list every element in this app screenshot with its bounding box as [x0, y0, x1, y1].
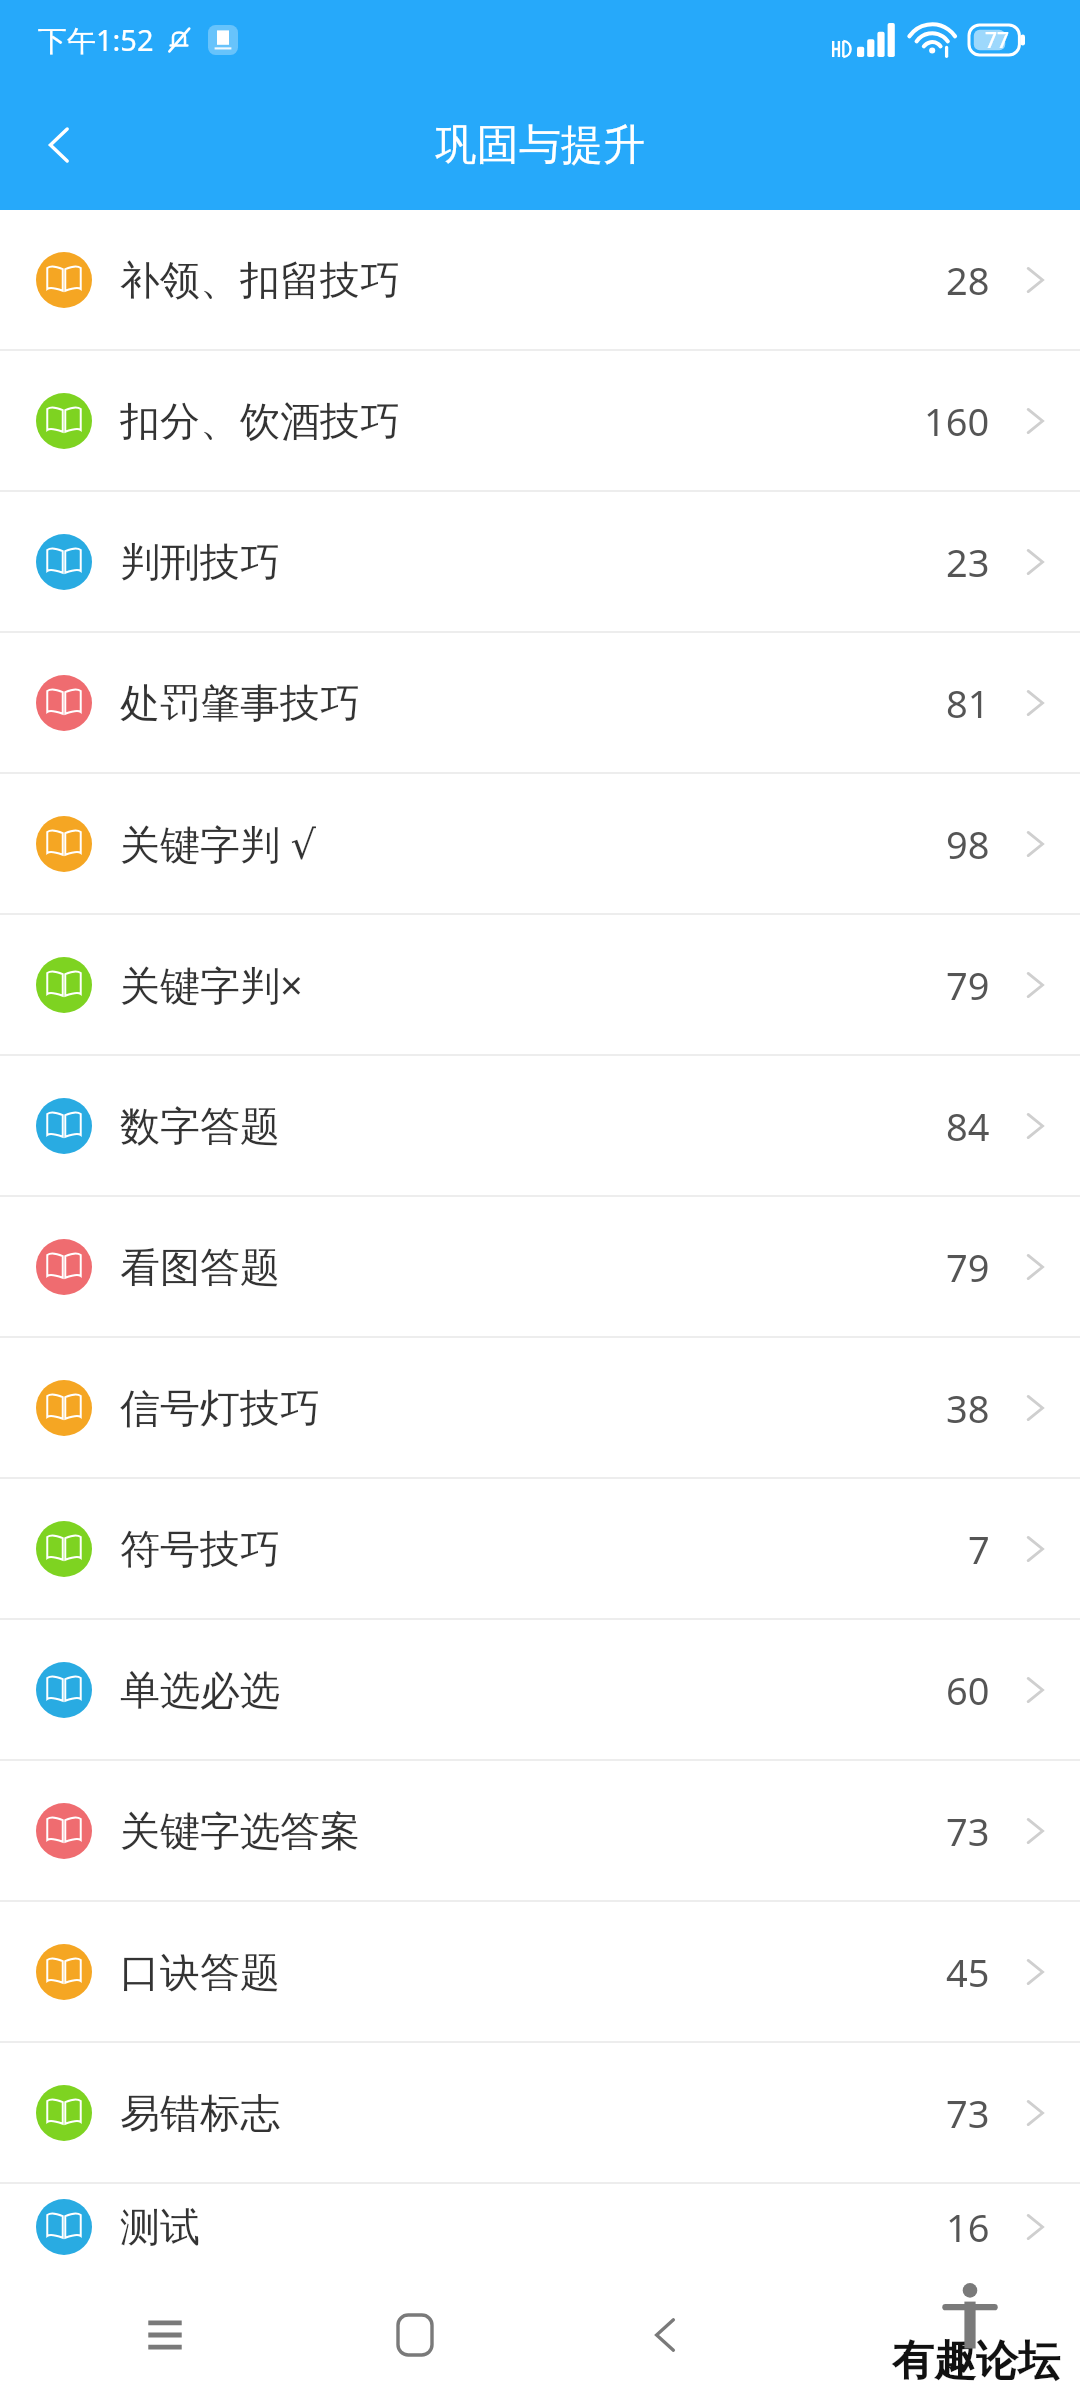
- button[interactable]: 符号技巧: [0, 1479, 1080, 1618]
- staticText: 数字答题: [120, 1101, 280, 1151]
- button[interactable]: 单选必选: [0, 1620, 1080, 1759]
- staticText: 73: [946, 1805, 990, 1857]
- staticText: 84: [946, 1100, 990, 1152]
- staticText: 关键字选答案: [120, 1806, 360, 1856]
- staticText: 下午1:52: [38, 20, 154, 60]
- staticText: 7: [968, 1523, 990, 1575]
- staticText: 看图答题: [120, 1242, 280, 1292]
- staticText: 38: [946, 1382, 990, 1434]
- staticText: 79: [946, 959, 990, 1011]
- button[interactable]: 关键字选答案: [0, 1761, 1080, 1900]
- staticText: 易错标志: [120, 2088, 280, 2138]
- button[interactable]: Back: [16, 101, 104, 189]
- staticText: 79: [946, 1241, 990, 1293]
- staticText: 信号灯技巧: [120, 1383, 320, 1433]
- staticText: 巩固与提升: [435, 119, 645, 172]
- staticText: 60: [946, 1664, 990, 1716]
- staticText: 判刑技巧: [120, 537, 280, 587]
- button[interactable]: 看图答题: [0, 1197, 1080, 1336]
- button[interactable]: 易错标志: [0, 2043, 1080, 2182]
- staticText: 测试: [120, 2202, 200, 2252]
- button[interactable]: 判刑技巧: [0, 492, 1080, 631]
- staticText: 关键字判×: [120, 957, 303, 1012]
- staticText: 28: [946, 254, 990, 306]
- staticText: 处罚肇事技巧: [120, 678, 360, 728]
- staticText: 73: [946, 2087, 990, 2139]
- staticText: 有趣论坛: [892, 2335, 1060, 2388]
- button[interactable]: Recent apps: [40, 2270, 290, 2400]
- staticText: 77: [985, 26, 1010, 55]
- button[interactable]: 测试: [0, 2184, 1080, 2270]
- staticText: 45: [946, 1946, 990, 1998]
- staticText: 23: [946, 536, 990, 588]
- button[interactable]: Home: [290, 2270, 540, 2400]
- button[interactable]: 扣分、饮酒技巧: [0, 351, 1080, 490]
- button[interactable]: 关键字判×: [0, 915, 1080, 1054]
- staticText: 符号技巧: [120, 1524, 280, 1574]
- staticText: 16: [946, 2201, 990, 2253]
- button[interactable]: 数字答题: [0, 1056, 1080, 1195]
- button[interactable]: 信号灯技巧: [0, 1338, 1080, 1477]
- button[interactable]: Back: [540, 2270, 790, 2400]
- staticText: 口诀答题: [120, 1947, 280, 1997]
- button[interactable]: 补领、扣留技巧: [0, 210, 1080, 349]
- button[interactable]: 处罚肇事技巧: [0, 633, 1080, 772]
- staticText: 单选必选: [120, 1665, 280, 1715]
- staticText: 160: [924, 395, 990, 447]
- button[interactable]: 口诀答题: [0, 1902, 1080, 2041]
- button[interactable]: 关键字判 √: [0, 774, 1080, 913]
- staticText: 扣分、饮酒技巧: [120, 396, 400, 446]
- staticText: 补领、扣留技巧: [120, 255, 400, 305]
- staticText: 81: [946, 677, 990, 729]
- staticText: 关键字判 √: [120, 816, 316, 871]
- staticText: 98: [946, 818, 990, 870]
